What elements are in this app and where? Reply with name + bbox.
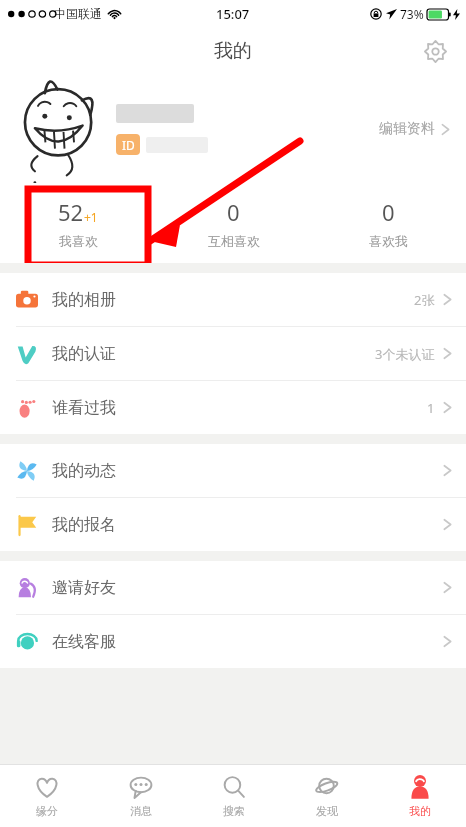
staticText: 谁看过我 <box>52 398 116 418</box>
staticText: 在线客服 <box>52 632 116 652</box>
staticText: 我的认证 <box>52 344 116 364</box>
staticText: 我的相册 <box>52 290 116 310</box>
button[interactable]: 搜索 <box>187 765 280 827</box>
staticText: 搜索 <box>223 804 245 818</box>
staticText: 中国联通 <box>54 6 102 21</box>
staticText: 我的 <box>409 804 431 818</box>
staticText: 消息 <box>130 804 152 818</box>
button[interactable]: 我的相册 <box>0 273 466 326</box>
staticText: 互相喜欢 <box>208 233 260 249</box>
button[interactable]: 在线客服 <box>0 615 466 668</box>
staticText: 邀请好友 <box>52 578 116 598</box>
staticText: 15:07 <box>216 5 250 23</box>
button[interactable]: 52 <box>0 183 156 263</box>
staticText: 3个未认证 <box>375 345 435 363</box>
staticText: ID <box>122 137 135 153</box>
button[interactable]: 编辑资料 <box>375 116 454 142</box>
button[interactable]: 发现 <box>280 765 373 827</box>
button[interactable]: 我的认证 <box>0 327 466 380</box>
button[interactable]: 我的报名 <box>0 498 466 551</box>
staticText: 喜欢我 <box>369 233 408 249</box>
staticText: 73% <box>400 6 424 22</box>
staticText: +1 <box>84 209 98 225</box>
button[interactable]: 谁看过我 <box>0 381 466 434</box>
button[interactable]: 我的 <box>373 765 466 827</box>
staticText: 2张 <box>414 291 435 309</box>
staticText: 编辑资料 <box>379 120 435 138</box>
staticText: 0 <box>382 197 395 227</box>
staticText: 缘分 <box>36 804 58 818</box>
staticText: 我的报名 <box>52 515 116 535</box>
staticText: 0 <box>227 197 240 227</box>
staticText: 发现 <box>316 804 338 818</box>
staticText: 我的动态 <box>52 461 116 481</box>
staticText: 我喜欢 <box>59 233 98 249</box>
staticText: 1 <box>427 399 435 417</box>
button[interactable]: 邀请好友 <box>0 561 466 614</box>
staticText: 我的 <box>214 39 252 63</box>
button[interactable]: 我的动态 <box>0 444 466 497</box>
staticText: 52 <box>58 197 84 227</box>
button[interactable]: 0 <box>156 183 311 263</box>
button[interactable]: 0 <box>311 183 466 263</box>
button[interactable]: ID <box>0 75 466 183</box>
button[interactable]: 缘分 <box>0 765 94 827</box>
button[interactable]: Settings <box>418 34 452 68</box>
button[interactable]: 消息 <box>94 765 187 827</box>
